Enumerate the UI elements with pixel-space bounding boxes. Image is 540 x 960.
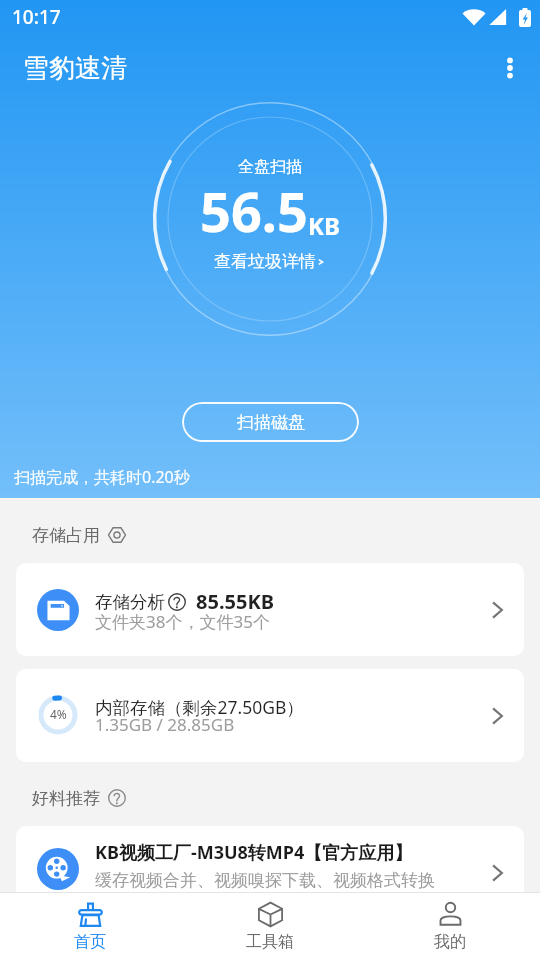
- staticText: 雪豹速清: [23, 52, 127, 85]
- staticText: 85.55KB: [196, 588, 274, 615]
- button[interactable]: More options: [488, 46, 532, 90]
- staticText: 全盘扫描: [238, 157, 302, 177]
- staticText: 我的: [434, 932, 466, 952]
- button[interactable]: KB视频工厂-M3U8转MP4【官方应用】: [16, 826, 524, 919]
- staticText: 存储分析: [95, 591, 165, 613]
- staticText: 文件夹38个，文件35个: [95, 610, 270, 633]
- button[interactable]: 首页: [0, 893, 180, 960]
- staticText: KB视频工厂-M3U8转MP4【官方应用】: [95, 840, 413, 865]
- button[interactable]: 存储分析: [16, 563, 524, 656]
- staticText: 缓存视频合并、视频嗅探下载、视频格式转换: [95, 870, 435, 891]
- staticText: 好料推荐: [32, 788, 100, 809]
- button[interactable]: 4%: [16, 669, 524, 762]
- button[interactable]: 查看垃圾详情: [210, 249, 330, 274]
- staticText: 内部存储（剩余27.50GB）: [95, 695, 304, 719]
- staticText: 扫描磁盘: [237, 412, 305, 433]
- staticText: 4%: [50, 706, 67, 722]
- staticText: 首页: [74, 932, 106, 952]
- staticText: 查看垃圾详情: [214, 251, 316, 272]
- staticText: 存储占用: [32, 525, 100, 546]
- staticText: KB: [308, 209, 340, 242]
- button[interactable]: 我的: [360, 893, 540, 960]
- staticText: 56.5: [200, 174, 308, 248]
- staticText: 工具箱: [246, 932, 294, 952]
- staticText: 10:17: [12, 4, 61, 30]
- staticText: 扫描完成，共耗时0.20秒: [14, 466, 190, 488]
- button[interactable]: 工具箱: [180, 893, 360, 960]
- button[interactable]: 扫描磁盘: [182, 402, 359, 442]
- staticText: 1.35GB / 28.85GB: [95, 713, 235, 736]
